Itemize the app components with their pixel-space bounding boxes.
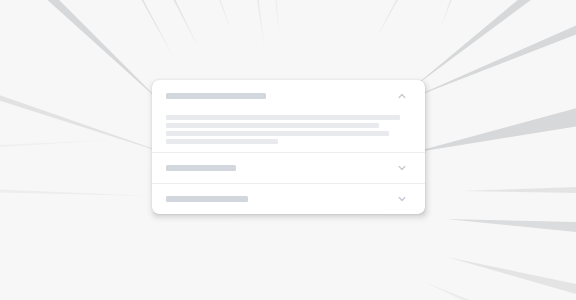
button[interactable]: Collapse section — [152, 80, 425, 152]
button[interactable]: Expand section — [152, 153, 425, 183]
other: Expand section — [395, 194, 409, 204]
button[interactable]: Expand section — [152, 184, 425, 214]
other: Collapse section — [395, 91, 409, 101]
other: Expand section — [395, 163, 409, 173]
